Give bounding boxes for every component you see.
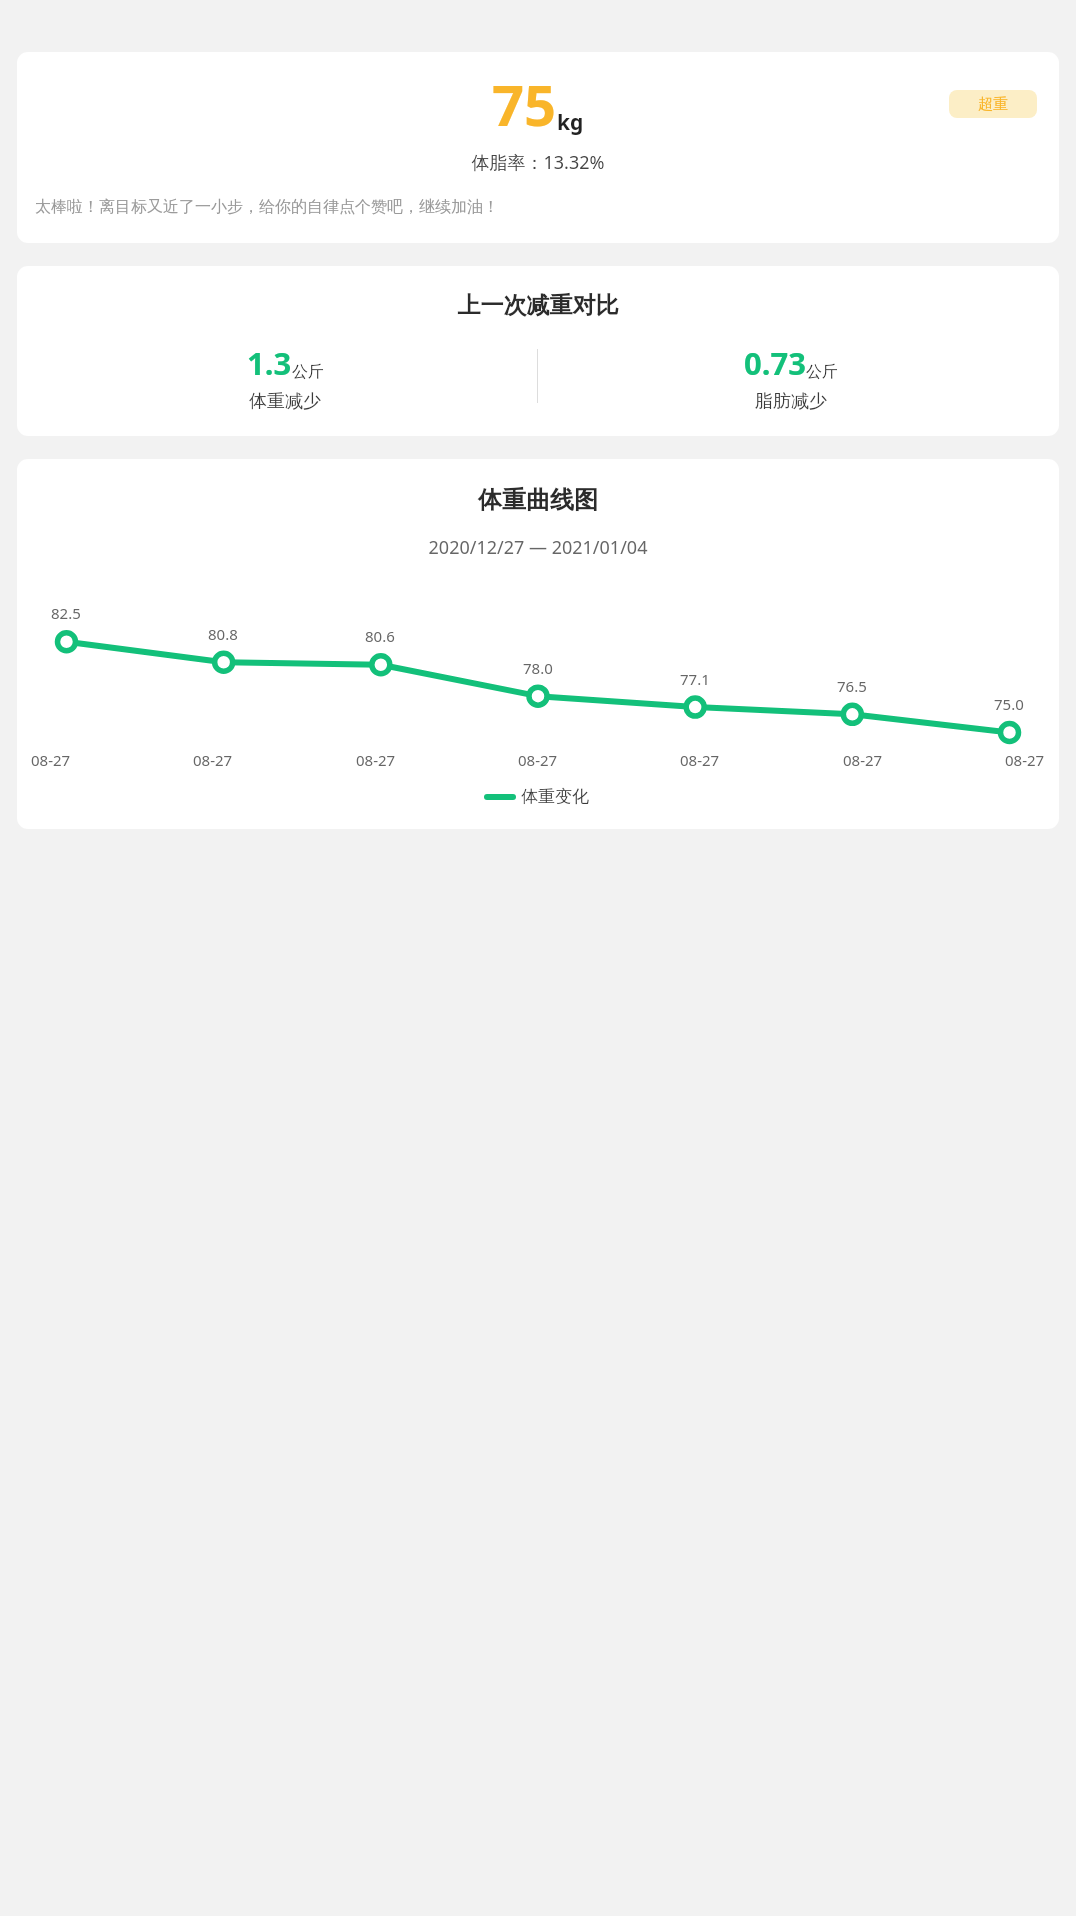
staticText: 太棒啦！离目标又近了一小步，给你的自律点个赞吧，继续加油！ <box>35 197 1041 217</box>
staticText: 80.8 <box>208 624 238 644</box>
staticText: 公斤 <box>806 362 838 382</box>
staticText: 08-27 <box>680 750 720 770</box>
staticText: 08-27 <box>193 750 233 770</box>
staticText: 体重曲线图 <box>31 485 1045 515</box>
other: Weight change legend <box>487 793 513 801</box>
staticText: 77.1 <box>680 669 710 689</box>
staticText: 08-27 <box>843 750 883 770</box>
staticText: 超重 <box>978 95 1008 114</box>
staticText: 体脂率：13.32% <box>33 150 1043 175</box>
button[interactable]: 上一次减重对比 <box>17 266 1059 436</box>
staticText: 体重变化 <box>521 786 589 807</box>
button[interactable]: 超重 <box>949 90 1037 118</box>
staticText: kg <box>557 108 584 137</box>
staticText: 08-27 <box>1005 750 1045 770</box>
staticText: 08-27 <box>518 750 558 770</box>
staticText: 78.0 <box>523 658 553 678</box>
button[interactable]: 0.73 <box>538 342 1043 410</box>
button[interactable]: 1.3 <box>33 342 537 410</box>
staticText: 2020/12/27 — 2021/01/04 <box>31 535 1045 560</box>
button[interactable]: 75 <box>17 52 1059 243</box>
staticText: 75 <box>492 66 557 142</box>
staticText: 公斤 <box>292 362 324 382</box>
staticText: 体重减少 <box>249 390 321 410</box>
staticText: 80.6 <box>365 626 395 646</box>
staticText: 08-27 <box>356 750 396 770</box>
staticText: 76.5 <box>837 676 867 696</box>
staticText: 上一次减重对比 <box>33 291 1043 320</box>
staticText: 08-27 <box>31 750 71 770</box>
staticText: 1.3 <box>247 342 292 384</box>
staticText: 82.5 <box>51 603 81 623</box>
staticText: 0.73 <box>744 342 806 384</box>
staticText: 脂肪减少 <box>755 390 827 410</box>
button[interactable]: 体重曲线图 <box>17 459 1059 829</box>
staticText: 75.0 <box>994 694 1024 714</box>
button[interactable]: Weight change legend <box>31 786 1045 807</box>
